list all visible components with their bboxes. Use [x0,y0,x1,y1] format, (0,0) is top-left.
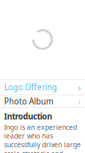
staticText: Photo Album [4,96,53,107]
staticText: Introduction [4,111,52,122]
staticText: › [78,95,81,108]
staticText: Ingo is an experienced leader who has su… [4,123,81,153]
staticText: Logo Offering [4,82,57,92]
staticText: › [78,81,81,93]
button[interactable]: Photo Album [0,95,85,108]
button[interactable]: Logo Offering [0,80,85,95]
